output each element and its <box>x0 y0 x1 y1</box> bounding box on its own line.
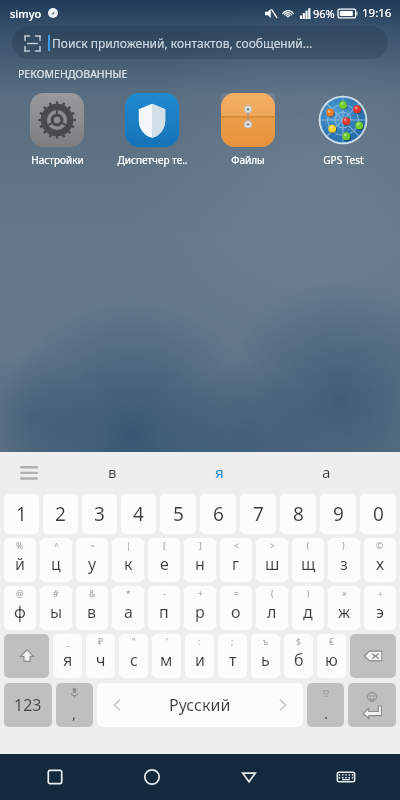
button[interactable]: | <box>112 538 144 582</box>
button[interactable]: ] <box>184 538 216 582</box>
button[interactable]: : <box>185 634 214 678</box>
staticText: р <box>195 601 205 623</box>
staticText: ф <box>14 601 26 623</box>
staticText: 19:16 <box>362 5 392 21</box>
button[interactable]: - <box>148 586 180 630</box>
button[interactable]: { <box>292 538 324 582</box>
staticText: € <box>329 636 334 648</box>
button[interactable]: 3 <box>82 494 117 534</box>
button[interactable]: GPS Test <box>299 89 387 167</box>
staticText: $ <box>296 636 301 648</box>
button[interactable]: # <box>40 586 72 630</box>
button[interactable]: ÷ <box>364 586 396 630</box>
staticText: в <box>87 601 97 623</box>
button[interactable]: ^ <box>40 538 72 582</box>
button[interactable]: Voice input and comma <box>56 683 93 727</box>
button[interactable]: > <box>256 538 288 582</box>
button[interactable]: Hide keyboard <box>226 754 272 800</box>
button[interactable]: Backspace <box>350 634 396 678</box>
button[interactable]: Menu <box>0 452 58 492</box>
button[interactable]: Файлы <box>204 89 292 167</box>
staticText: РЕКОМЕНДОВАННЫЕ <box>18 67 128 81</box>
button[interactable]: @ <box>4 586 36 630</box>
button[interactable]: Scan <box>12 26 388 59</box>
staticText: ' <box>166 636 168 648</box>
staticText: ы <box>50 601 63 623</box>
staticText: = <box>234 588 239 600</box>
button[interactable]: © <box>364 538 396 582</box>
button[interactable]: 9 <box>320 494 356 534</box>
button[interactable]: ; <box>218 634 247 678</box>
button[interactable]: < <box>220 538 252 582</box>
button[interactable]: × <box>328 586 360 630</box>
button[interactable]: Enter <box>348 683 396 727</box>
button[interactable]: " <box>119 634 148 678</box>
staticText: ÷ <box>378 588 383 600</box>
button[interactable]: 123 <box>4 683 52 727</box>
button[interactable]: я <box>166 452 273 492</box>
staticText: . <box>324 703 329 723</box>
staticText: ^ <box>54 540 59 552</box>
staticText: я <box>215 462 224 482</box>
staticText: _ <box>66 636 70 648</box>
button[interactable]: !? <box>307 683 344 727</box>
button[interactable]: Настройки <box>13 89 101 167</box>
button[interactable]: } <box>328 538 360 582</box>
button[interactable]: = <box>220 586 252 630</box>
staticText: 9 <box>333 501 344 527</box>
button[interactable]: % <box>4 538 36 582</box>
button[interactable]: 1 <box>4 494 39 534</box>
staticText: о <box>231 601 241 623</box>
other: Scan <box>25 36 40 51</box>
staticText: × <box>342 588 347 600</box>
button[interactable]: & <box>76 586 108 630</box>
button[interactable]: 7 <box>240 494 276 534</box>
button[interactable]: 2 <box>43 494 78 534</box>
button[interactable]: 6 <box>200 494 236 534</box>
button[interactable]: Диспетчер те.. <box>108 89 196 167</box>
button[interactable]: Русский <box>97 683 303 727</box>
button[interactable]: ) <box>292 586 324 630</box>
staticText: Диспетчер те.. <box>117 153 188 167</box>
staticText: ) <box>307 588 310 600</box>
button[interactable]: 8 <box>280 494 316 534</box>
button[interactable]: _ <box>53 634 82 678</box>
button[interactable]: $ <box>284 634 313 678</box>
button[interactable]: [ <box>148 538 180 582</box>
button[interactable]: 5 <box>160 494 196 534</box>
staticText: simyo <box>10 6 42 21</box>
staticText: 4 <box>133 501 144 527</box>
button[interactable]: a <box>273 452 380 492</box>
button[interactable]: € <box>317 634 346 678</box>
staticText: ь <box>261 649 270 671</box>
staticText: Русский <box>169 694 231 716</box>
button[interactable]: Shift <box>4 634 49 678</box>
staticText: в <box>108 462 117 482</box>
staticText: Поиск приложений, контактов, сообщений… <box>52 35 313 51</box>
staticText: Файлы <box>231 153 265 167</box>
staticText: " <box>132 636 136 648</box>
button[interactable]: Switch keyboard <box>323 754 369 800</box>
staticText: * <box>126 588 131 600</box>
staticText: т <box>229 649 237 671</box>
button[interactable]: + <box>184 586 216 630</box>
staticText: a <box>322 462 331 482</box>
staticText: > <box>270 540 275 552</box>
button[interactable]: * <box>112 586 144 630</box>
button[interactable]: ₽ <box>86 634 115 678</box>
button[interactable]: в <box>58 452 166 492</box>
button[interactable]: 4 <box>121 494 156 534</box>
button[interactable]: Recent apps <box>32 754 78 800</box>
staticText: } <box>342 540 346 552</box>
staticText: © <box>376 540 384 552</box>
staticText: ъ <box>263 636 269 648</box>
button[interactable]: ъ <box>251 634 280 678</box>
button[interactable]: Home <box>129 754 175 800</box>
staticText: б <box>294 649 304 671</box>
button[interactable]: 0 <box>360 494 396 534</box>
staticText: з <box>340 553 348 575</box>
button[interactable]: ( <box>256 586 288 630</box>
staticText: Настройки <box>31 153 84 167</box>
button[interactable]: ' <box>152 634 181 678</box>
button[interactable]: ~ <box>76 538 108 582</box>
